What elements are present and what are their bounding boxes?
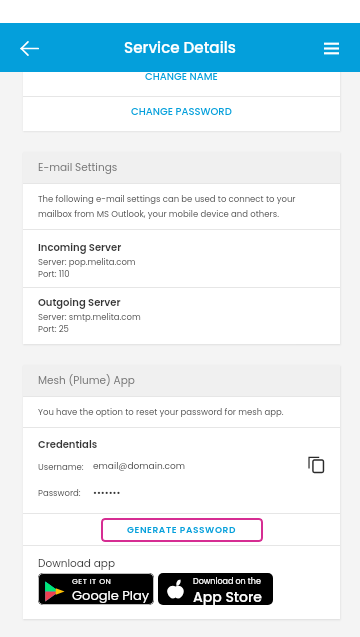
staticText: CHANGE NAME: [145, 69, 218, 83]
button[interactable]: Download on the App Store: [158, 573, 273, 605]
staticText: Port: 110: [38, 268, 70, 280]
staticText: App Store: [193, 587, 262, 605]
button[interactable]: Get it on Google Play: [38, 573, 154, 605]
staticText: Credentials: [38, 437, 98, 451]
staticText: E-mail Settings: [38, 160, 118, 175]
staticText: •••••••: [93, 486, 121, 499]
staticText: Mesh (Plume) App: [38, 373, 135, 388]
staticText: The following e-mail settings can be use…: [38, 193, 326, 220]
button[interactable]: GENERATE PASSWORD: [101, 518, 263, 542]
staticText: GENERATE PASSWORD: [127, 524, 237, 537]
button[interactable]: Menu: [314, 31, 348, 65]
staticText: Port: 25: [38, 323, 69, 335]
staticText: You have the option to reset your passwo…: [38, 406, 284, 418]
staticText: Outgoing Server: [38, 295, 121, 309]
button[interactable]: Back: [12, 31, 46, 65]
staticText: Server: smtp.melita.com: [38, 311, 141, 323]
staticText: Password:: [38, 487, 81, 499]
staticText: Incoming Server: [38, 240, 122, 254]
staticText: Download on the: [193, 576, 261, 587]
staticText: Google Play: [72, 586, 150, 604]
staticText: Server: pop.melita.com: [38, 256, 136, 268]
button[interactable]: CHANGE PASSWORD: [23, 97, 340, 131]
button[interactable]: CHANGE NAME: [23, 65, 340, 96]
staticText: email@domain.com: [93, 460, 186, 473]
staticText: GET IT ON: [72, 576, 112, 586]
staticText: Username:: [38, 461, 84, 473]
staticText: CHANGE PASSWORD: [131, 104, 232, 118]
staticText: Download app: [38, 556, 116, 571]
button[interactable]: Copy: [305, 453, 327, 475]
staticText: Service Details: [124, 37, 236, 58]
